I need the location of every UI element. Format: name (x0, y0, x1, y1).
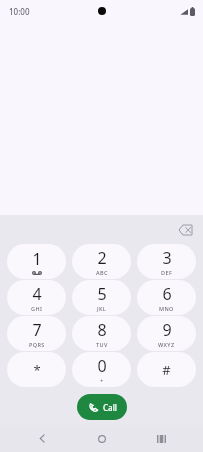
button[interactable]: 0 (72, 352, 131, 387)
button[interactable]: Call (77, 394, 127, 420)
button[interactable]: * (7, 352, 66, 387)
staticText: MNO (159, 305, 174, 312)
staticText: WXYZ (158, 341, 175, 348)
staticText: + (100, 377, 104, 385)
staticText: 4 (32, 283, 42, 305)
staticText: PQRS (29, 341, 45, 348)
staticText: 1 (32, 248, 42, 270)
button[interactable]: Backspace (174, 219, 196, 241)
staticText: ABC (96, 269, 108, 276)
button[interactable]: 2 (72, 244, 131, 279)
staticText: 3 (162, 247, 172, 269)
button[interactable]: 3 (137, 244, 196, 279)
staticText: 7 (32, 319, 42, 341)
staticText: DEF (161, 269, 173, 276)
button[interactable]: 5 (72, 280, 131, 315)
staticText: 9 (162, 319, 172, 341)
button[interactable]: Recent apps (144, 425, 178, 452)
staticText: 6 (162, 283, 172, 305)
button[interactable]: 6 (137, 280, 196, 315)
staticText: 8 (97, 319, 107, 341)
staticText: # (162, 361, 171, 379)
button[interactable]: 9 (137, 316, 196, 351)
staticText: TUV (96, 341, 108, 348)
staticText: GHI (31, 305, 43, 312)
staticText: 10:00 (9, 6, 30, 17)
button[interactable]: Back (25, 425, 59, 452)
staticText: Call (103, 402, 117, 413)
staticText: 5 (97, 283, 107, 305)
button[interactable]: 1 (7, 244, 66, 279)
button[interactable]: 8 (72, 316, 131, 351)
button[interactable]: 7 (7, 316, 66, 351)
staticText: JKL (97, 305, 107, 312)
button[interactable]: # (137, 352, 196, 387)
button[interactable]: Home (85, 425, 119, 452)
button[interactable]: 4 (7, 280, 66, 315)
staticText: * (33, 361, 41, 379)
staticText: 0 (97, 355, 107, 377)
staticText: 2 (97, 247, 107, 269)
